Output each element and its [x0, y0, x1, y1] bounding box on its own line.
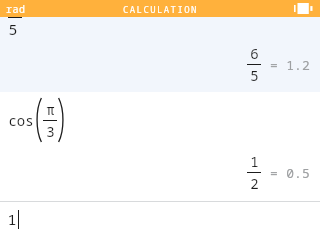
staticText: 1 — [250, 152, 259, 171]
staticText: 6 — [250, 44, 259, 63]
button[interactable]: 5 — [0, 17, 320, 92]
staticText: 5 — [250, 66, 259, 85]
staticText: = — [270, 164, 278, 182]
staticText: 0.5 — [286, 164, 310, 182]
staticText: 2 — [250, 174, 259, 193]
button[interactable]: cos — [0, 92, 320, 201]
other: Battery — [294, 3, 314, 14]
button[interactable]: 1 — [0, 202, 320, 240]
staticText: CALCULATION — [123, 3, 198, 15]
staticText: 1.2 — [286, 56, 310, 74]
staticText: cos — [8, 111, 34, 130]
button[interactable]: rad — [6, 2, 26, 16]
staticText: 1 — [7, 209, 17, 229]
staticText: π — [46, 100, 55, 119]
staticText: 3 — [46, 122, 55, 141]
staticText: = — [270, 56, 278, 74]
staticText: 5 — [8, 19, 18, 39]
